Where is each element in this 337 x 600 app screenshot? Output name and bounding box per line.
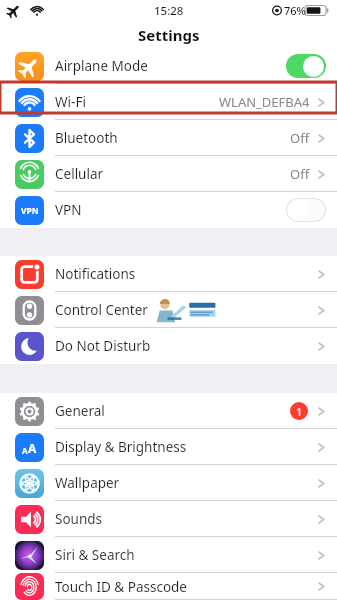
button[interactable]: VPN: [0, 192, 337, 228]
staticText: Control Center: [55, 301, 148, 319]
button[interactable]: A: [0, 429, 337, 465]
staticText: Do Not Disturb: [55, 337, 151, 355]
button[interactable]: Wallpaper: [0, 465, 337, 501]
button[interactable]: Cellular: [0, 156, 337, 192]
staticText: A: [28, 440, 37, 456]
button[interactable]: Switch on: [286, 54, 326, 78]
button[interactable]: Control Center: [0, 292, 337, 328]
staticText: 76%: [284, 3, 306, 18]
staticText: Siri & Search: [55, 546, 135, 564]
button[interactable]: Siri & Search: [0, 537, 337, 573]
staticText: Off: [290, 129, 310, 147]
staticText: WLAN_DEFBA4: [219, 93, 310, 111]
staticText: VPN: [55, 201, 82, 219]
button[interactable]: Sounds: [0, 501, 337, 537]
staticText: Airplane Mode: [55, 57, 148, 75]
staticText: Touch ID & Passcode: [55, 578, 187, 596]
staticText: Off: [290, 165, 310, 183]
button[interactable]: Touch ID & Passcode: [0, 573, 337, 600]
staticText: Wallpaper: [55, 474, 120, 492]
button[interactable]: General: [0, 393, 337, 429]
staticText: Sounds: [55, 510, 103, 528]
staticText: Display & Brightness: [55, 438, 187, 456]
staticText: A: [22, 445, 28, 456]
button[interactable]: Switch off: [286, 198, 326, 222]
button[interactable]: Bluetooth: [0, 120, 337, 156]
button[interactable]: Do Not Disturb: [0, 328, 337, 364]
staticText: Notifications: [55, 265, 136, 283]
staticText: Wi-Fi: [55, 93, 86, 111]
button[interactable]: Airplane Mode: [0, 48, 337, 84]
staticText: Cellular: [55, 165, 104, 183]
staticText: Settings: [138, 25, 200, 45]
staticText: Bluetooth: [55, 129, 118, 147]
staticText: 15:28: [154, 3, 184, 19]
staticText: VPN: [21, 205, 39, 217]
staticText: 1: [296, 404, 303, 419]
button[interactable]: Wi-Fi: [0, 84, 337, 120]
button[interactable]: Notifications: [0, 256, 337, 292]
staticText: General: [55, 402, 105, 420]
